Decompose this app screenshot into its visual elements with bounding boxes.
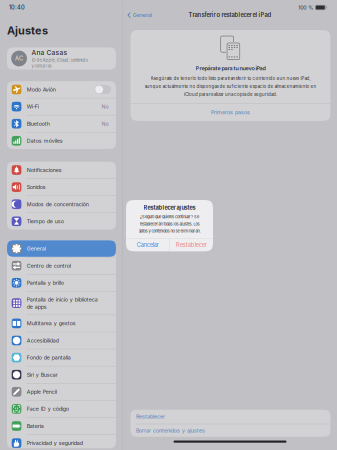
staticText: ¿Seguro que quieres continuar? Se: [140, 214, 199, 219]
staticText: Notificaciones: [27, 167, 62, 173]
staticText: Datos móviles: [27, 138, 63, 144]
staticText: restablecerán todas los ajustes. Los: [139, 221, 199, 226]
staticText: No: [102, 120, 109, 127]
staticText: Batería: [27, 423, 44, 429]
button[interactable]: Modos de concentración: [7, 196, 116, 212]
staticText: y compras: [32, 63, 52, 68]
button[interactable]: Bluetooth: [7, 115, 116, 132]
staticText: Multitarea y gestos: [27, 320, 76, 327]
staticText: Restablecer: [136, 413, 165, 420]
staticText: Cancelar: [137, 241, 159, 248]
staticText: Restablecer ajustes: [143, 204, 195, 211]
button[interactable]: Modo Avión: [7, 81, 116, 98]
button[interactable]: Centro de control: [7, 257, 116, 274]
staticText: AC: [15, 55, 23, 62]
staticText: Modo Avión: [27, 86, 56, 93]
staticText: Tiempo de uso: [27, 218, 64, 225]
staticText: Primeros pasos: [211, 109, 250, 115]
staticText: Ana Casas: [32, 49, 68, 57]
staticText: Borrar contenidos y ajustes: [136, 427, 205, 434]
staticText: Prepárate para tu nuevo iPad: [195, 65, 265, 71]
button[interactable]: Apple Pencil: [7, 383, 116, 400]
staticText: Sonidos: [27, 184, 46, 190]
button[interactable]: Primeros pasos: [130, 103, 330, 121]
button[interactable]: Siri y Buscar: [7, 366, 116, 383]
staticText: Privacidad y seguridad: [27, 440, 83, 446]
button[interactable]: Privacidad y seguridad: [7, 435, 116, 450]
staticText: Apple Pencil: [27, 389, 57, 395]
staticText: Accesibilidad: [27, 337, 59, 344]
button[interactable]: AC: [7, 47, 116, 70]
button[interactable]: Pantalla de inicio y biblioteca: [7, 292, 116, 315]
button[interactable]: Multitarea y gestos: [7, 315, 116, 332]
staticText: Bluetooth: [27, 120, 50, 127]
button[interactable]: General: [7, 240, 116, 257]
button[interactable]: Datos móviles: [7, 132, 116, 149]
staticText: Modos de concentración: [27, 201, 89, 207]
button[interactable]: Pantalla y brillo: [7, 274, 116, 291]
staticText: iCloud para realizar una copia de seguri…: [184, 92, 277, 97]
staticText: Face ID y código: [27, 406, 69, 412]
staticText: Pantalla y brillo: [27, 280, 64, 286]
staticText: General: [27, 245, 46, 252]
button[interactable]: Wi-Fi: [7, 98, 116, 115]
staticText: Fondo de pantalla: [27, 354, 71, 361]
button[interactable]: Restablecer: [170, 239, 213, 251]
button[interactable]: Borrar contenidos y ajustes: [130, 424, 330, 437]
button[interactable]: Restablecer: [130, 409, 330, 424]
button[interactable]: Sonidos: [7, 179, 116, 195]
staticText: 10:40: [9, 4, 25, 11]
button[interactable]: Accesibilidad: [7, 332, 116, 349]
button[interactable]: Fondo de pantalla: [7, 349, 116, 366]
staticText: No: [102, 103, 109, 110]
staticText: Centro de control: [27, 262, 71, 269]
staticText: General: [133, 12, 152, 18]
staticText: Ajustes: [7, 24, 48, 37]
button[interactable]: Batería: [7, 418, 116, 434]
button[interactable]: Face ID y código: [7, 401, 116, 417]
staticText: Transferir o restablecer el iPad: [188, 11, 271, 18]
staticText: Wi-Fi: [27, 103, 39, 110]
staticText: de apps: [27, 303, 47, 310]
staticText: Asegúrate de tenerlo todo listo para tra…: [150, 76, 310, 81]
button[interactable]: Cancelar: [126, 239, 169, 251]
staticText: Restablecer: [176, 241, 207, 248]
button[interactable]: Notificaciones: [7, 162, 116, 178]
staticText: aunque actualmente no dispongas de sufic…: [144, 84, 316, 89]
staticText: datos y contenidos no se eliminarán.: [138, 229, 200, 233]
button[interactable]: Tiempo de uso: [7, 213, 116, 230]
staticText: ID de Apple, iCloud, contenido: [32, 58, 88, 63]
button[interactable]: General: [126, 9, 153, 21]
staticText: Siri y Buscar: [27, 371, 58, 378]
staticText: Pantalla de inicio y biblioteca: [27, 296, 98, 303]
staticText: 100 %: [298, 4, 313, 11]
